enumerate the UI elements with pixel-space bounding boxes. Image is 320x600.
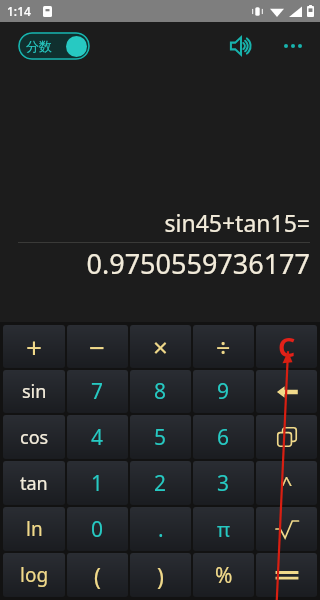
staticText: log	[20, 562, 49, 588]
button[interactable]: tan	[3, 461, 65, 505]
staticText: 5	[154, 423, 167, 452]
button[interactable]: Backspace	[256, 370, 317, 413]
staticText: +	[26, 328, 43, 366]
staticText: ÷	[216, 330, 231, 364]
button[interactable]: 分数	[18, 32, 90, 60]
button[interactable]: %	[193, 553, 254, 597]
button[interactable]: Copy	[256, 415, 317, 459]
button[interactable]: sin	[3, 370, 65, 413]
staticText: 3	[217, 469, 230, 498]
button[interactable]: Square root	[256, 507, 317, 551]
button[interactable]: π	[193, 507, 254, 551]
button[interactable]: Equals	[256, 553, 317, 597]
button[interactable]: ÷	[193, 325, 254, 368]
button[interactable]: .	[130, 507, 191, 551]
button[interactable]: 1	[67, 461, 128, 505]
staticText: 6	[217, 423, 230, 452]
button[interactable]: 8	[130, 370, 191, 413]
staticText: ×	[153, 329, 168, 364]
staticText: 7	[91, 377, 104, 406]
button[interactable]: )	[130, 553, 191, 597]
button[interactable]: ln	[3, 507, 65, 551]
staticText: 0	[91, 515, 104, 544]
staticText: (	[94, 560, 101, 591]
staticText: sin	[22, 379, 47, 404]
button[interactable]: log	[3, 553, 65, 597]
button[interactable]: cos	[3, 415, 65, 459]
staticText: π	[217, 516, 231, 543]
button[interactable]: 0	[67, 507, 128, 551]
button[interactable]: 6	[193, 415, 254, 459]
staticText: )	[157, 560, 164, 591]
button[interactable]: ^	[256, 461, 317, 505]
staticText: 1	[91, 469, 104, 498]
staticText: .	[158, 515, 164, 544]
button[interactable]: +	[3, 325, 65, 368]
staticText: cos	[20, 425, 49, 450]
staticText: C	[278, 328, 296, 365]
staticText: %	[215, 561, 233, 590]
staticText: sin45+tan15=	[0, 207, 310, 238]
staticText: 4	[91, 423, 104, 452]
button[interactable]: (	[67, 553, 128, 597]
staticText: 8	[154, 377, 167, 406]
staticText: 9	[217, 377, 230, 406]
button[interactable]: 2	[130, 461, 191, 505]
staticText: −	[89, 328, 106, 366]
button[interactable]: 3	[193, 461, 254, 505]
button[interactable]: 7	[67, 370, 128, 413]
button[interactable]: 5	[130, 415, 191, 459]
button[interactable]: 4	[67, 415, 128, 459]
staticText: tan	[20, 471, 48, 496]
staticText: 1:14	[7, 3, 31, 19]
staticText: 0.9750559736177	[0, 245, 310, 282]
button[interactable]: More options	[276, 29, 310, 63]
button[interactable]: 9	[193, 370, 254, 413]
staticText: 分数	[26, 38, 52, 54]
staticText: ^	[281, 470, 293, 497]
button[interactable]: −	[67, 325, 128, 368]
button[interactable]: Sound	[224, 29, 258, 63]
button[interactable]: C	[256, 325, 317, 368]
staticText: 2	[154, 469, 167, 498]
button[interactable]: ×	[130, 325, 191, 368]
staticText: ln	[26, 516, 43, 542]
